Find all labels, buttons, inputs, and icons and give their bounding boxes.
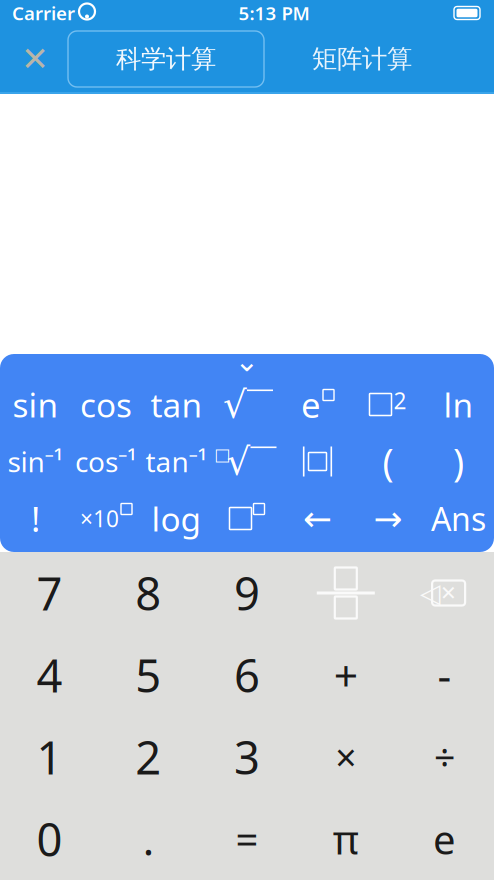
staticText: 7: [36, 563, 62, 623]
button[interactable]: 8: [99, 552, 198, 634]
button[interactable]: Backspace: [395, 552, 494, 634]
staticText: √: [223, 383, 247, 426]
button[interactable]: □: [212, 433, 282, 490]
staticText: ): [453, 437, 464, 486]
button[interactable]: Fraction: [296, 552, 395, 634]
button[interactable]: +: [296, 634, 395, 716]
staticText: Ans: [431, 497, 486, 540]
staticText: tan⁻¹: [145, 443, 207, 480]
staticText: ◁: [420, 578, 441, 608]
staticText: +: [334, 647, 358, 703]
staticText: cos⁻¹: [75, 443, 137, 480]
button[interactable]: ln: [423, 376, 494, 433]
staticText: (: [382, 437, 393, 486]
staticText: 矩阵计算: [312, 43, 412, 74]
staticText: ←: [303, 499, 332, 538]
staticText: ln: [443, 382, 473, 427]
staticText: 6: [234, 645, 260, 705]
button[interactable]: ×: [296, 716, 395, 798]
staticText: 科学计算: [116, 43, 216, 74]
staticText: 0: [36, 809, 62, 869]
button[interactable]: !: [0, 490, 71, 547]
staticText: 2: [393, 385, 406, 415]
button[interactable]: π: [296, 798, 395, 880]
button[interactable]: 2: [99, 716, 198, 798]
staticText: 2: [135, 727, 161, 787]
button[interactable]: Ans: [423, 490, 494, 547]
button[interactable]: [282, 433, 353, 490]
staticText: 9: [234, 563, 260, 623]
staticText: cos: [80, 382, 132, 427]
staticText: √: [226, 440, 250, 483]
button[interactable]: ×10: [71, 490, 141, 547]
staticText: 5:13 PM: [238, 1, 309, 25]
button[interactable]: 6: [198, 634, 296, 716]
button[interactable]: -: [395, 634, 494, 716]
staticText: -: [438, 647, 452, 703]
button[interactable]: (: [353, 433, 423, 490]
staticText: 8: [135, 563, 161, 623]
staticText: 4: [36, 645, 62, 705]
button[interactable]: tan⁻¹: [141, 433, 212, 490]
button[interactable]: sin⁻¹: [0, 433, 71, 490]
staticText: ✕: [21, 40, 49, 78]
button[interactable]: 7: [0, 552, 99, 634]
staticText: ×: [335, 732, 356, 782]
button[interactable]: .: [99, 798, 198, 880]
staticText: e: [301, 381, 321, 427]
button[interactable]: sin: [0, 376, 71, 433]
staticText: tan: [150, 382, 202, 427]
button[interactable]: e: [395, 798, 494, 880]
staticText: =: [235, 812, 258, 865]
staticText: log: [151, 496, 201, 541]
staticText: ⌄: [234, 344, 259, 378]
staticText: ✕: [440, 582, 457, 604]
button[interactable]: 5: [99, 634, 198, 716]
staticText: e: [433, 812, 456, 865]
button[interactable]: log: [141, 490, 212, 547]
button[interactable]: 4: [0, 634, 99, 716]
button[interactable]: →: [353, 490, 423, 547]
staticText: 1: [36, 727, 62, 787]
button[interactable]: cos: [71, 376, 141, 433]
button[interactable]: [212, 490, 282, 547]
button[interactable]: ÷: [395, 716, 494, 798]
staticText: ÷: [434, 732, 455, 782]
button[interactable]: 0: [0, 798, 99, 880]
button[interactable]: ): [423, 433, 494, 490]
button[interactable]: 矩阵计算: [264, 31, 460, 87]
button[interactable]: 9: [198, 552, 296, 634]
button[interactable]: 科学计算: [68, 31, 264, 87]
staticText: sin: [12, 382, 58, 427]
staticText: →: [373, 499, 402, 538]
button[interactable]: cos⁻¹: [71, 433, 141, 490]
staticText: .: [143, 811, 154, 867]
staticText: Carrier: [12, 1, 75, 25]
staticText: □: [214, 445, 230, 464]
button[interactable]: =: [198, 798, 296, 880]
button[interactable]: e: [282, 376, 353, 433]
staticText: π: [333, 812, 359, 865]
staticText: 5: [135, 645, 161, 705]
button[interactable]: tan: [141, 376, 212, 433]
staticText: ×10: [80, 503, 119, 533]
staticText: !: [31, 495, 40, 541]
staticText: [73, 0, 79, 28]
staticText: 3: [234, 727, 260, 787]
staticText: sin⁻¹: [7, 443, 63, 480]
button[interactable]: Collapse function panel: [212, 354, 282, 376]
button[interactable]: Close: [2, 30, 68, 88]
button[interactable]: 3: [198, 716, 296, 798]
button[interactable]: [212, 376, 282, 433]
button[interactable]: ←: [282, 490, 353, 547]
button[interactable]: 1: [0, 716, 99, 798]
button[interactable]: 2: [353, 376, 423, 433]
